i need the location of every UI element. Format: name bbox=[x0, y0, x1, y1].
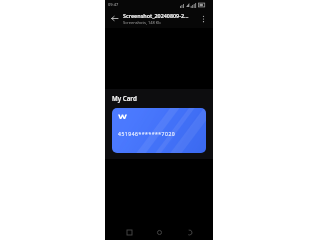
staticText: My Card bbox=[112, 94, 137, 102]
staticText: 09:47 bbox=[108, 2, 119, 7]
button[interactable]: Home bbox=[153, 226, 165, 238]
button[interactable]: Recent apps bbox=[183, 226, 195, 238]
button[interactable]: 451946*******7020 bbox=[112, 108, 206, 153]
staticText: Screenshots, 148 Kb bbox=[123, 20, 161, 25]
staticText: 451946*******7020 bbox=[118, 131, 176, 138]
staticText: Screenshot_20240809-2... bbox=[123, 12, 189, 19]
button[interactable]: Back bbox=[123, 226, 135, 238]
button[interactable]: More options bbox=[198, 13, 209, 24]
button[interactable]: Back bbox=[109, 13, 120, 24]
